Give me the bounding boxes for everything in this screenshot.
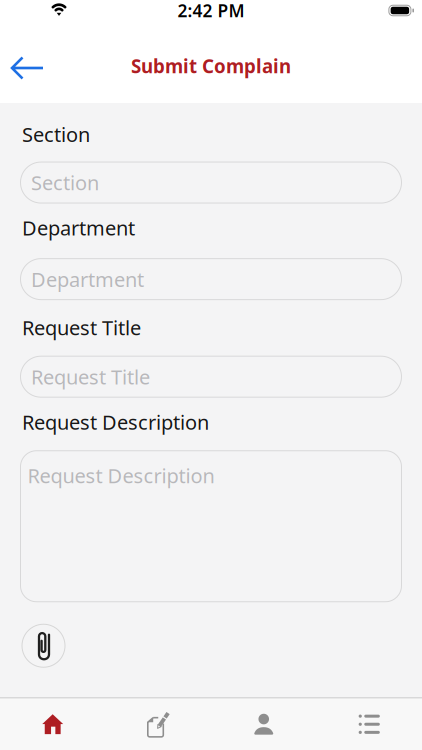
button[interactable]: Profile bbox=[211, 698, 316, 750]
staticText: Request Title bbox=[22, 314, 141, 341]
button[interactable]: Submit Complain bbox=[105, 698, 211, 750]
staticText: 2:42 PM bbox=[177, 0, 244, 22]
staticText: Department bbox=[31, 266, 144, 292]
button[interactable]: Requests bbox=[316, 698, 422, 750]
staticText: Section bbox=[31, 169, 99, 196]
button[interactable]: Home bbox=[0, 698, 105, 750]
staticText: Submit Complain bbox=[131, 54, 291, 78]
staticText: Request Description bbox=[22, 409, 209, 435]
staticText: Request Description bbox=[27, 462, 214, 489]
button[interactable]: Back bbox=[0, 48, 44, 87]
staticText: Section bbox=[22, 121, 90, 148]
staticText: Request Title bbox=[31, 363, 150, 390]
button[interactable]: Attach file bbox=[21, 624, 65, 668]
staticText: Department bbox=[22, 215, 135, 241]
